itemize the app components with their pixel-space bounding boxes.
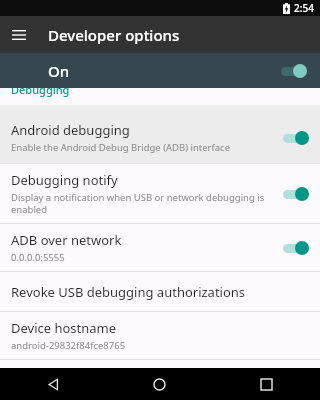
button[interactable]: ADB over network [0,224,320,271]
staticText: Debugging notify [11,171,118,189]
button[interactable]: Android debugging [0,112,320,163]
staticText: Enable the Android Debug Bridge (ADB) in… [11,141,231,154]
button[interactable]: Debugging notify [0,164,320,223]
button[interactable]: Back [0,368,106,400]
staticText: Debugging [11,88,70,97]
staticText: Android debugging [11,121,130,139]
button[interactable]: Revoke USB debugging authorizations [0,272,320,311]
staticText: Developer options [48,25,180,45]
button[interactable]: Recent apps [213,368,320,400]
button[interactable]: Device hostname [0,312,320,359]
staticText: 2:54 [294,1,314,15]
staticText: Device hostname [11,319,117,337]
staticText: android-29832f84fce8765 [11,339,126,352]
button[interactable]: Open navigation drawer [6,22,32,48]
staticText: 0.0.0.0:5555 [11,251,65,264]
staticText: ADB over network [11,231,122,249]
button[interactable]: Home [106,368,213,400]
staticText: Display a notification when USB or netwo… [11,191,265,216]
staticText: Revoke USB debugging authorizations [11,283,246,301]
staticText: On [48,61,70,81]
button[interactable]: On [0,53,320,88]
